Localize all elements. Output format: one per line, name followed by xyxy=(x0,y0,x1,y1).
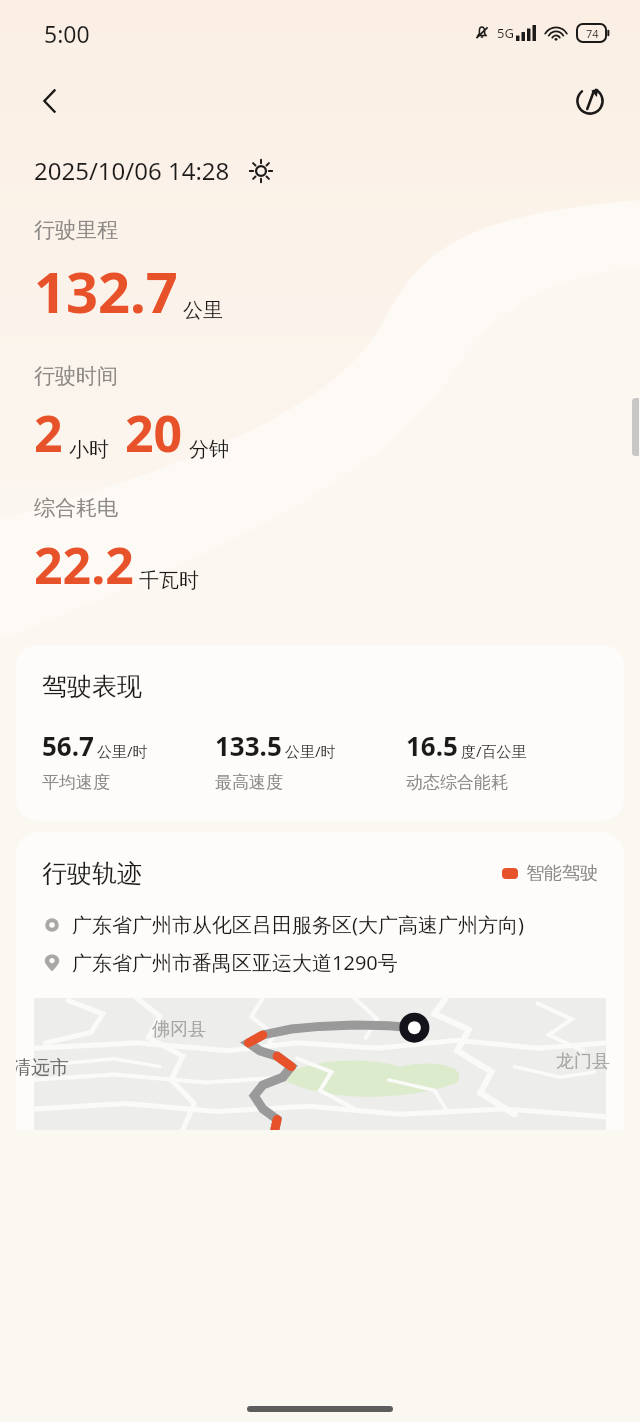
staticText: 132.7 xyxy=(34,253,178,329)
staticText: 广东省广州市从化区吕田服务区(大广高速广州方向) xyxy=(72,911,524,938)
staticText: 佛冈县 xyxy=(152,1018,206,1041)
staticText: 74 xyxy=(586,26,599,41)
button[interactable]: Back xyxy=(22,73,78,129)
staticText: 行驶轨迹 xyxy=(42,858,142,889)
staticText: 行驶时间 xyxy=(34,363,118,389)
staticText: 千瓦时 xyxy=(139,568,199,593)
button[interactable]: Refresh xyxy=(562,73,618,129)
staticText: 行驶里程 xyxy=(34,217,118,243)
staticText: 广东省广州市番禺区亚运大道1290号 xyxy=(72,949,398,976)
staticText: 5:00 xyxy=(44,18,90,49)
staticText: 综合耗电 xyxy=(34,495,118,521)
staticText: 平均速度 xyxy=(42,772,110,793)
button[interactable]: 行驶轨迹 xyxy=(16,832,624,1130)
staticText: 公里/时 xyxy=(97,741,148,761)
staticText: 22.2 xyxy=(34,531,134,599)
staticText: 动态综合能耗 xyxy=(406,772,508,793)
staticText: 2025/10/06 14:28 xyxy=(34,154,230,187)
staticText: 公里/时 xyxy=(285,741,336,761)
staticText: 驾驶表现 xyxy=(42,671,142,702)
staticText: 龙门县 xyxy=(556,1050,610,1073)
staticText: 2 xyxy=(34,399,63,467)
staticText: 分钟 xyxy=(189,437,229,462)
staticText: 清远市 xyxy=(16,1056,69,1080)
staticText: 度/百公里 xyxy=(461,741,527,761)
staticText: 133.5 xyxy=(215,728,282,763)
staticText: 5G xyxy=(497,24,514,42)
staticText: 智能驾驶 xyxy=(526,862,598,885)
button[interactable]: 驾驶表现 xyxy=(16,645,624,821)
staticText: 56.7 xyxy=(42,728,94,763)
staticText: 16.5 xyxy=(406,728,458,763)
staticText: 最高速度 xyxy=(215,772,283,793)
staticText: 20 xyxy=(125,399,183,467)
staticText: 公里 xyxy=(183,298,223,323)
staticText: 小时 xyxy=(69,437,109,462)
